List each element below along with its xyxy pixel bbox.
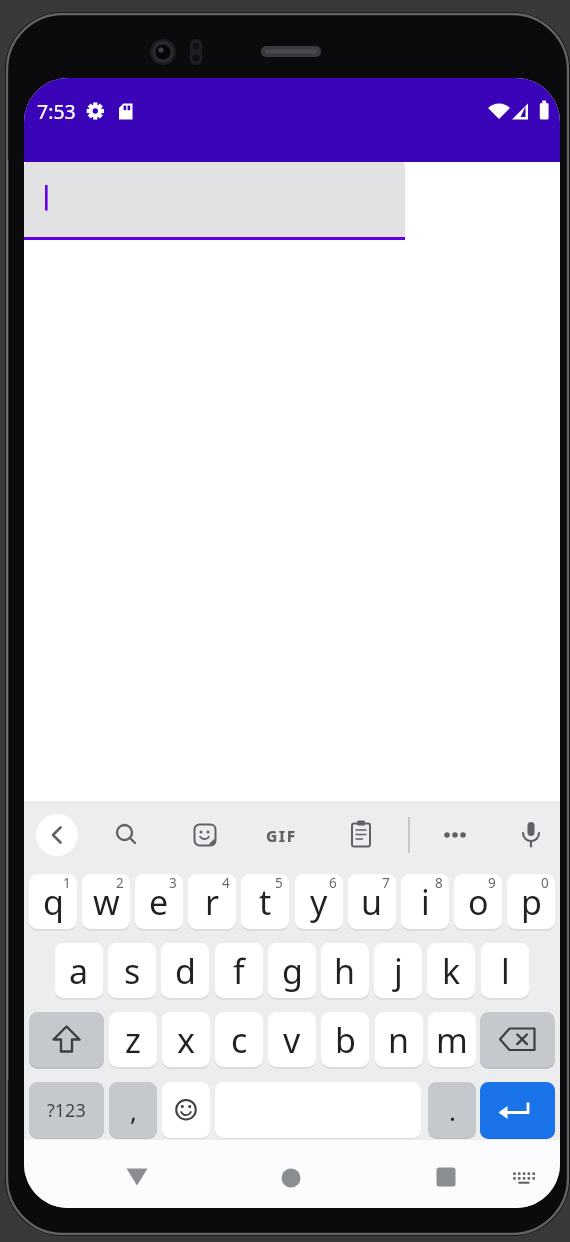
staticText: 4 [222, 874, 230, 892]
button[interactable]: g [268, 943, 316, 998]
button[interactable]: l [481, 943, 529, 998]
button[interactable]: . [428, 1082, 476, 1138]
button[interactable]: i [401, 874, 449, 929]
button[interactable] [116, 1156, 158, 1198]
staticText: m [436, 1017, 468, 1063]
staticText: p [521, 879, 542, 925]
button[interactable] [24, 162, 405, 237]
button[interactable]: f [215, 943, 263, 998]
button[interactable]: p [507, 874, 555, 929]
staticText: j [394, 948, 403, 994]
button[interactable] [162, 1082, 210, 1138]
button[interactable]: n [375, 1012, 423, 1067]
staticText: 9 [488, 874, 496, 892]
staticText: t [259, 879, 272, 925]
button[interactable]: q [29, 874, 77, 929]
staticText: 2 [116, 874, 124, 892]
staticText: f [233, 948, 245, 994]
button[interactable]: t [241, 874, 289, 929]
button[interactable]: GIF [260, 814, 302, 856]
button[interactable] [29, 1012, 104, 1067]
button[interactable] [270, 1157, 312, 1199]
staticText: r [205, 879, 220, 925]
button[interactable] [340, 814, 382, 856]
button[interactable]: b [321, 1012, 369, 1067]
staticText: w [93, 879, 120, 925]
staticText: ?123 [47, 1098, 86, 1123]
button[interactable]: e [135, 874, 183, 929]
button[interactable]: a [55, 943, 103, 998]
staticText: 7:53 [37, 98, 76, 125]
staticText: 8 [435, 874, 443, 892]
staticText: 6 [329, 874, 337, 892]
button[interactable]: ?123 [29, 1082, 104, 1138]
staticText: i [421, 879, 430, 925]
button[interactable]: o [454, 874, 502, 929]
staticText: GIF [266, 825, 297, 846]
staticText: l [501, 948, 510, 994]
button[interactable]: z [109, 1012, 157, 1067]
button[interactable] [425, 1156, 467, 1198]
staticText: u [361, 879, 383, 925]
button[interactable]: w [82, 874, 130, 929]
button[interactable]: , [109, 1082, 157, 1138]
button[interactable]: c [215, 1012, 263, 1067]
button[interactable]: r [188, 874, 236, 929]
button[interactable] [36, 814, 78, 856]
button[interactable]: h [321, 943, 369, 998]
staticText: 5 [275, 874, 283, 892]
staticText: e [149, 879, 169, 925]
button[interactable]: j [374, 943, 422, 998]
staticText: z [125, 1017, 141, 1063]
button[interactable]: k [427, 943, 475, 998]
button[interactable]: u [348, 874, 396, 929]
button[interactable] [510, 814, 552, 856]
staticText: c [231, 1017, 248, 1063]
button[interactable] [480, 1082, 555, 1138]
button[interactable] [105, 814, 147, 856]
staticText: b [335, 1017, 356, 1063]
button[interactable]: s [108, 943, 156, 998]
staticText: . [449, 1093, 456, 1128]
staticText: n [388, 1017, 410, 1063]
staticText: 7 [382, 874, 390, 892]
button[interactable] [480, 1012, 555, 1067]
button[interactable] [502, 1156, 544, 1198]
staticText: x [177, 1017, 195, 1063]
staticText: k [442, 948, 461, 994]
staticText: h [334, 948, 356, 994]
staticText: o [468, 879, 489, 925]
staticText: y [310, 879, 328, 925]
button[interactable]: d [161, 943, 209, 998]
staticText: , [130, 1093, 137, 1128]
staticText: 0 [541, 874, 549, 892]
button[interactable]: y [295, 874, 343, 929]
staticText: d [175, 948, 196, 994]
staticText: s [124, 948, 141, 994]
button[interactable]: v [268, 1012, 316, 1067]
button[interactable]: x [162, 1012, 210, 1067]
staticText: g [282, 948, 303, 994]
button[interactable] [184, 814, 226, 856]
staticText: v [283, 1017, 301, 1063]
staticText: 1 [63, 874, 71, 892]
staticText: q [43, 879, 64, 925]
staticText: a [69, 948, 89, 994]
button[interactable]: m [428, 1012, 476, 1067]
staticText: 3 [169, 874, 177, 892]
button[interactable] [434, 814, 476, 856]
